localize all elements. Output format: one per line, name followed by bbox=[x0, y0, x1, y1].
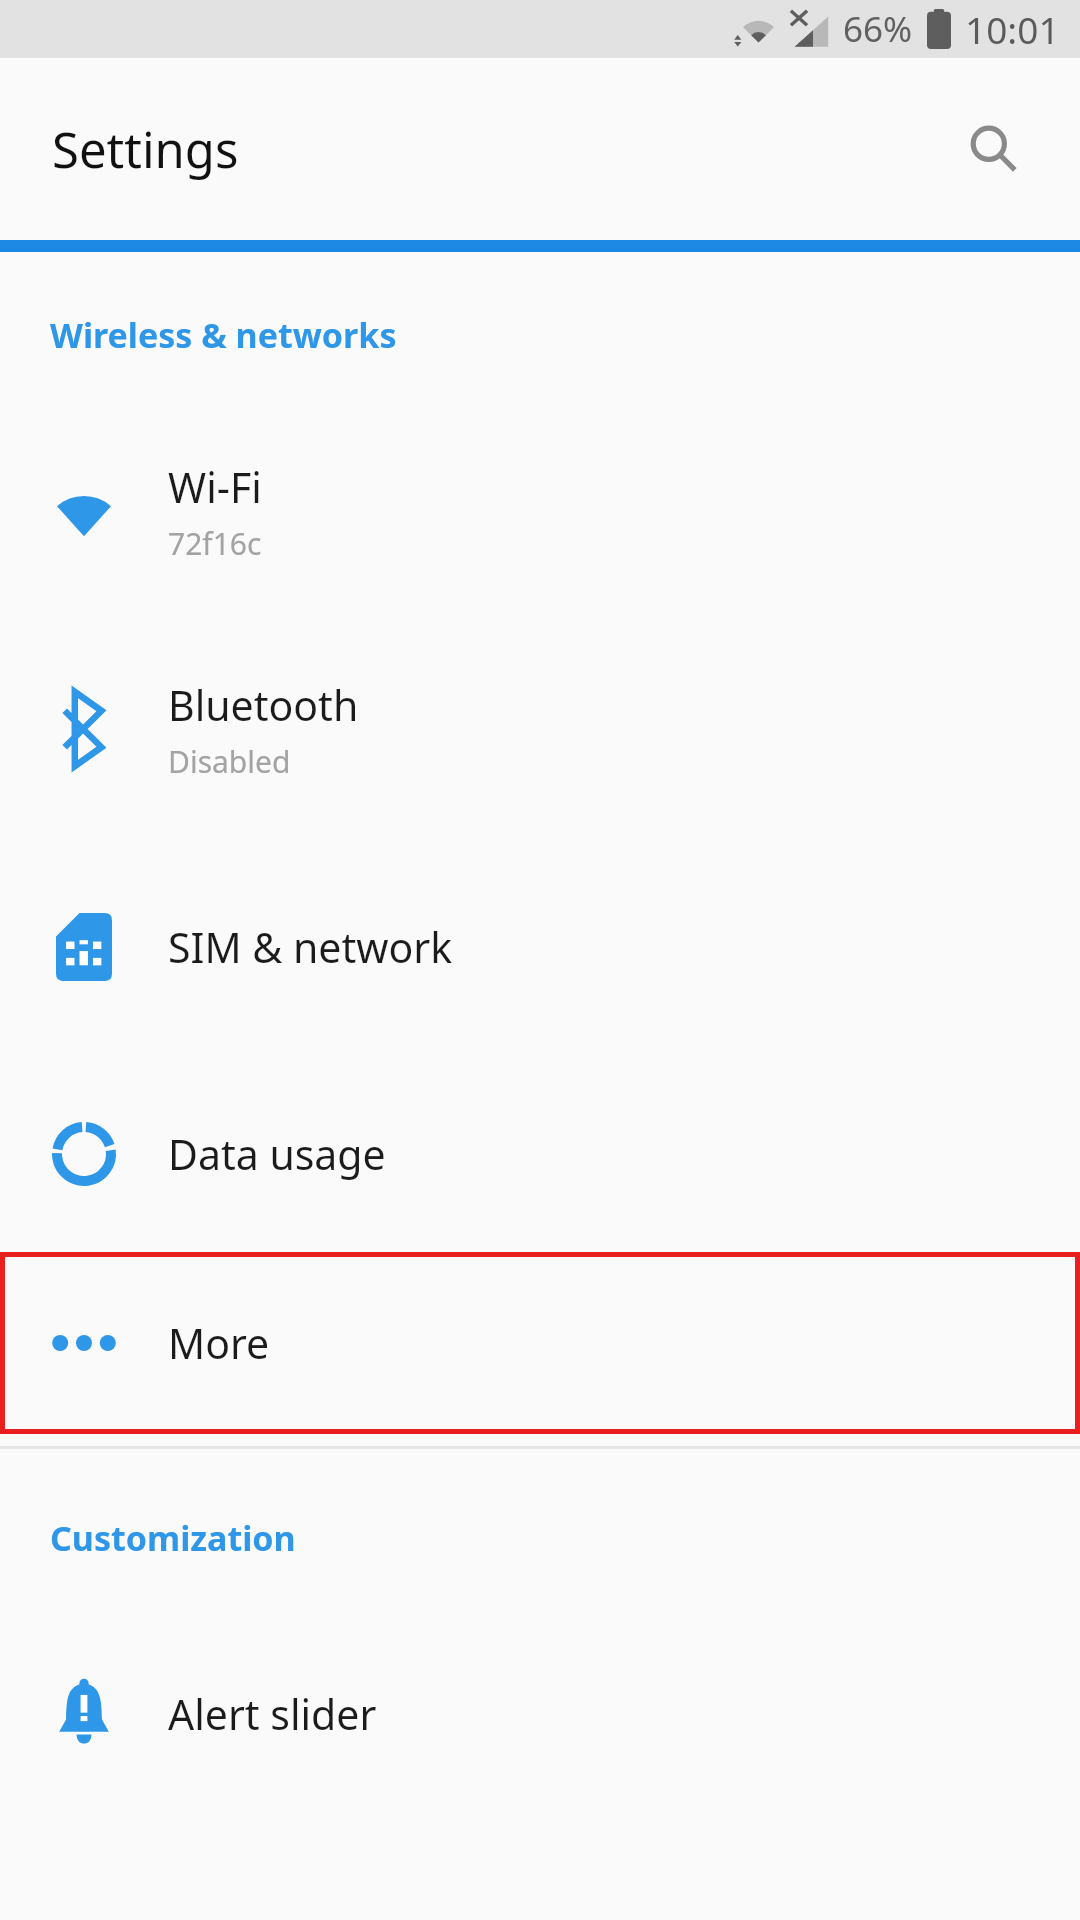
button[interactable]: Search bbox=[948, 103, 1040, 195]
staticText: Alert slider bbox=[168, 1686, 377, 1742]
staticText: Wireless & networks bbox=[50, 312, 397, 358]
staticText: 72f16c bbox=[168, 523, 262, 564]
button[interactable]: Wi-Fi bbox=[0, 402, 1080, 620]
button[interactable]: Bluetooth bbox=[0, 620, 1080, 838]
staticText: Customization bbox=[50, 1515, 296, 1561]
staticText: Bluetooth bbox=[168, 677, 359, 733]
button[interactable]: More bbox=[0, 1252, 1080, 1434]
button[interactable]: Alert slider bbox=[0, 1605, 1080, 1823]
staticText: Wi-Fi bbox=[168, 459, 262, 515]
staticText: SIM & network bbox=[168, 919, 453, 975]
staticText: 66% bbox=[843, 5, 913, 53]
button[interactable]: SIM & network bbox=[0, 838, 1080, 1056]
staticText: 10:01 bbox=[965, 4, 1060, 54]
staticText: Disabled bbox=[168, 741, 291, 782]
staticText: More bbox=[168, 1315, 270, 1371]
staticText: Settings bbox=[52, 116, 239, 183]
button[interactable]: Data usage bbox=[0, 1056, 1080, 1252]
staticText: Data usage bbox=[168, 1126, 386, 1182]
